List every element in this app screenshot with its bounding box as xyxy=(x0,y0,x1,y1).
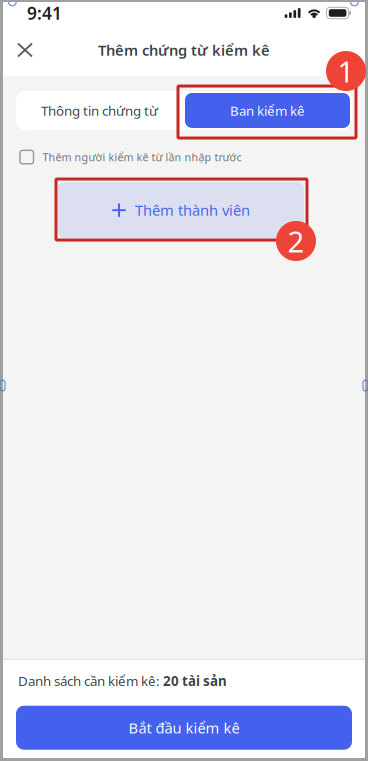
button[interactable]: Thông tin chứng từ xyxy=(16,91,183,130)
staticText: Danh sách cần kiểm kê: xyxy=(18,672,163,690)
button[interactable]: Close xyxy=(3,24,47,76)
staticText: Thêm thành viên xyxy=(135,200,250,220)
staticText: Thêm chứng từ kiểm kê xyxy=(98,40,270,60)
staticText: 9:41 xyxy=(27,1,62,24)
staticText: Thêm người kiểm kê từ lần nhập trước xyxy=(42,150,241,164)
button[interactable]: Thêm người kiểm kê từ lần nhập trước xyxy=(20,150,33,164)
button[interactable]: Bắt đầu kiểm kê xyxy=(16,706,352,750)
staticText: Thông tin chứng từ xyxy=(41,102,158,119)
staticText: Ban kiểm kê xyxy=(230,102,305,119)
staticText: 2 xyxy=(287,221,304,260)
button[interactable]: Thêm thành viên xyxy=(58,182,304,238)
staticText: 1 xyxy=(337,51,354,90)
staticText: 20 tài sản xyxy=(163,672,227,690)
staticText: Bắt đầu kiểm kê xyxy=(128,718,239,737)
button[interactable]: Ban kiểm kê xyxy=(183,91,352,130)
